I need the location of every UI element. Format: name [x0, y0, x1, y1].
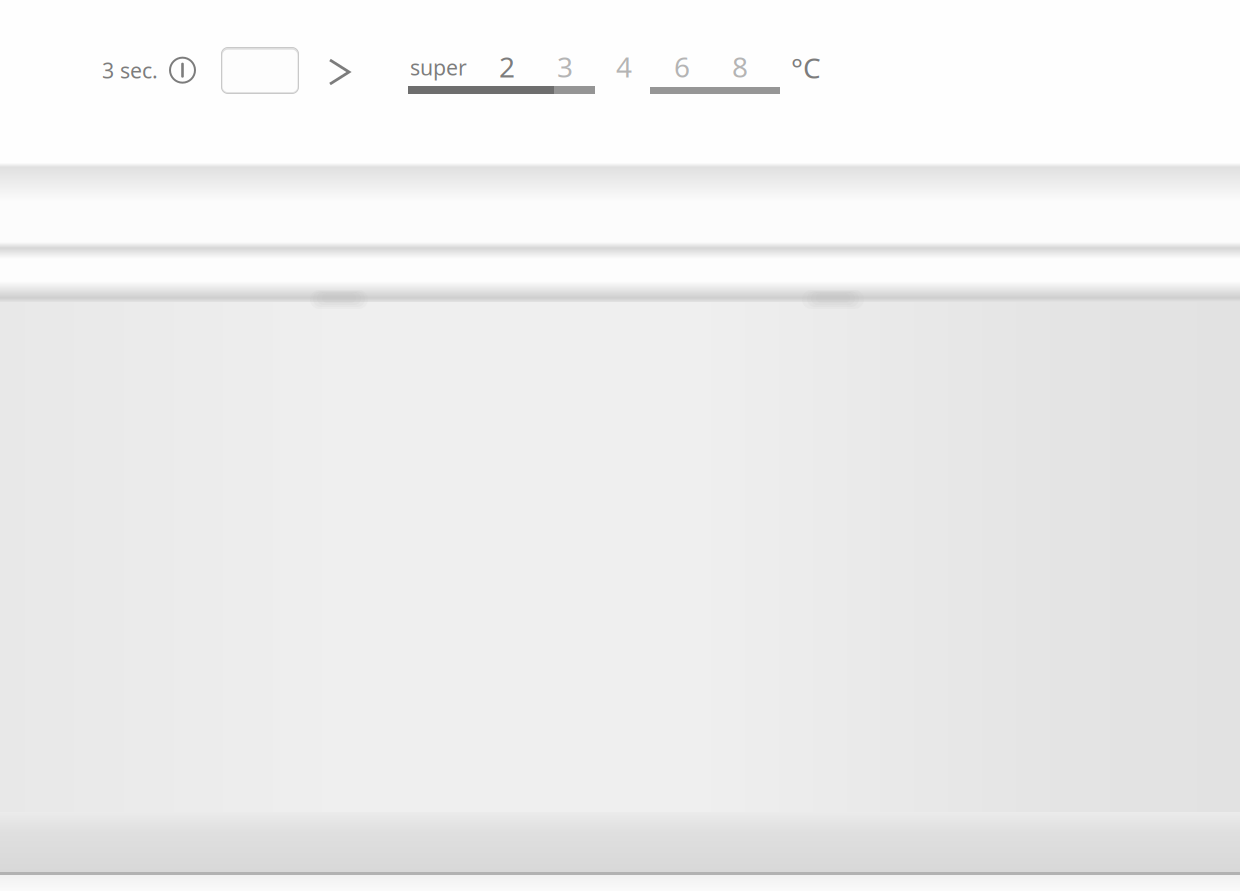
staticText: super [410, 53, 467, 81]
staticText: °C [791, 49, 821, 86]
staticText: 3 sec. [102, 56, 158, 84]
staticText: 8 [732, 48, 748, 85]
staticText: 6 [674, 48, 690, 85]
button[interactable]: Hold three seconds for standby [102, 56, 195, 84]
staticText: 2 [499, 48, 515, 85]
staticText: 4 [616, 48, 632, 85]
button[interactable]: Set temperature [221, 47, 299, 94]
button[interactable]: Next setting [328, 56, 352, 88]
staticText: 3 [557, 48, 573, 85]
